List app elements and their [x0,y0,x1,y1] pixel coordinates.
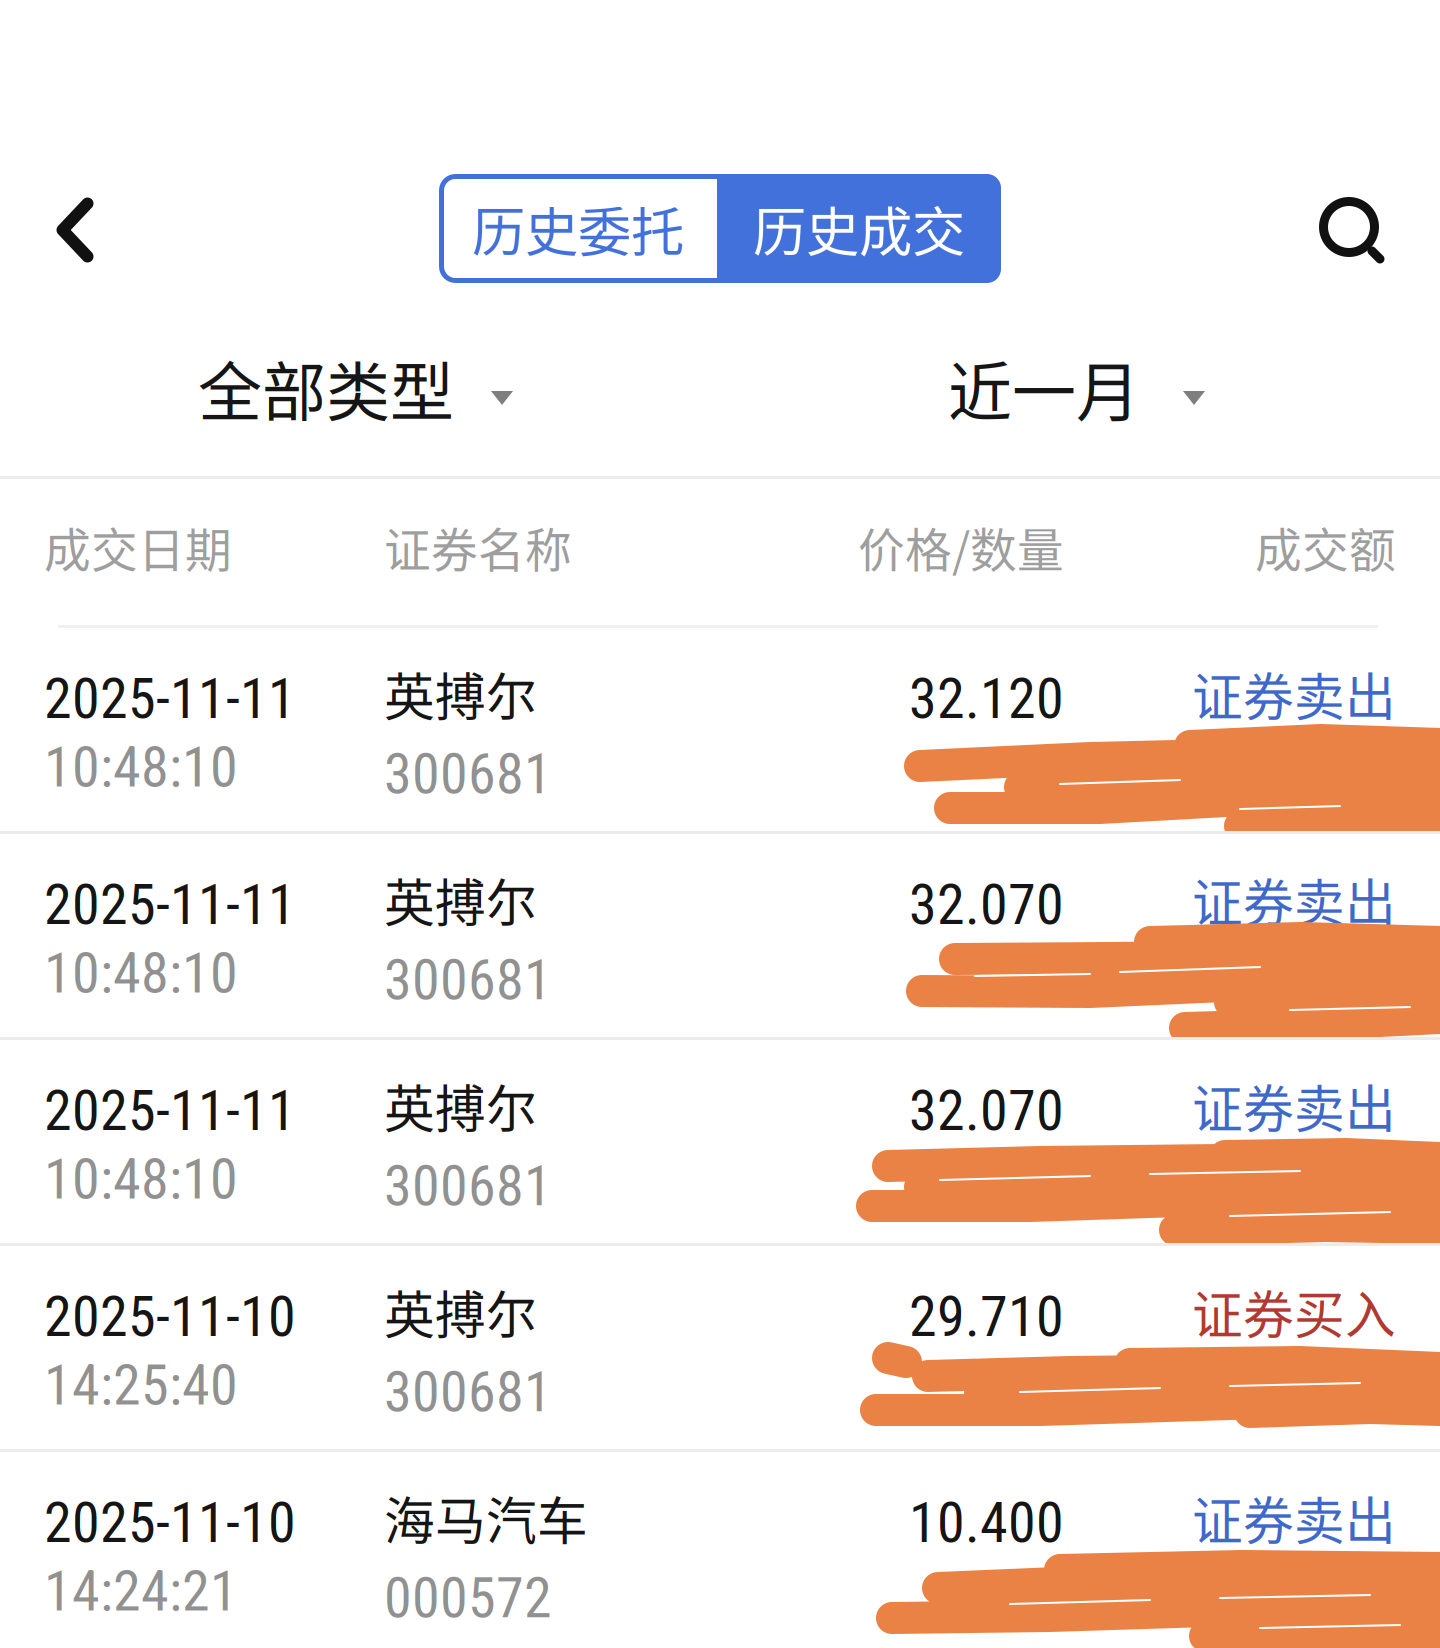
staticText: 10:48:10 [44,1147,238,1212]
staticText: 证券名称 [384,513,572,581]
staticText: 历史委托 [472,190,684,267]
button[interactable]: 历史委托 [439,174,717,283]
staticText: 300681 [384,741,552,807]
staticText: 英搏尔 [384,1275,537,1348]
staticText: 10.400 [909,1490,1064,1556]
button[interactable]: Back [0,155,150,305]
staticText: 证券卖出 [1192,1069,1396,1142]
staticText: 证券卖出 [1192,657,1396,730]
staticText: 英搏尔 [384,863,537,936]
staticText: 32.120 [909,666,1064,732]
staticText: 历史成交 [753,190,965,267]
staticText: 300681 [384,1359,552,1425]
staticText: 近一月 [948,341,1140,434]
button[interactable]: Search [1279,155,1429,305]
staticText: 英搏尔 [384,1069,537,1142]
staticText: 2025-11-11 [44,1078,296,1144]
button[interactable]: 近一月 [924,330,1229,458]
staticText: 2025-11-10 [44,1284,296,1350]
staticText: 32.070 [909,872,1064,938]
staticText: 32.070 [909,1078,1064,1144]
staticText: 成交日期 [44,513,232,581]
staticText: 000572 [384,1565,552,1631]
staticText: 14:24:21 [44,1559,238,1624]
staticText: 300681 [384,1153,552,1219]
staticText: 证券买入 [1192,1275,1396,1348]
staticText: 2025-11-10 [44,1490,296,1556]
staticText: 成交额 [1255,513,1396,581]
button[interactable]: 历史成交 [717,174,1001,283]
button[interactable]: 全部类型 [174,330,537,458]
staticText: 英搏尔 [384,657,537,730]
staticText: 14:25:40 [44,1353,238,1418]
staticText: 证券卖出 [1192,863,1396,936]
staticText: 10:48:10 [44,941,238,1006]
staticText: 海马汽车 [384,1481,588,1554]
staticText: 证券卖出 [1192,1481,1396,1554]
staticText: 10:48:10 [44,735,238,800]
staticText: 价格/数量 [858,513,1064,581]
staticText: 29.710 [909,1284,1064,1350]
staticText: 2025-11-11 [44,872,296,938]
staticText: 2025-11-11 [44,666,296,732]
staticText: 300681 [384,947,552,1013]
staticText: 全部类型 [198,341,454,434]
